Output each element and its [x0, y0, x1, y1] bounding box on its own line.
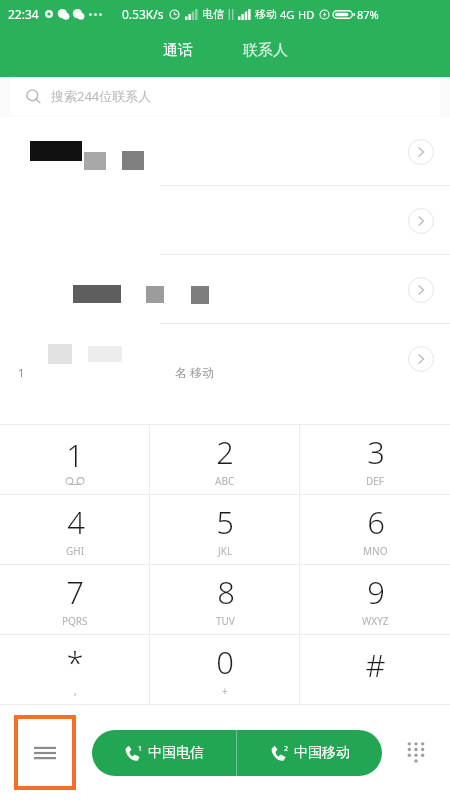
- button[interactable]: 2: [237, 730, 382, 776]
- staticText: 0: [216, 641, 234, 683]
- button[interactable]: *: [0, 635, 150, 704]
- button[interactable]: 8: [150, 565, 300, 634]
- button[interactable]: 1: [0, 425, 150, 494]
- staticText: #: [365, 644, 386, 686]
- staticText: 名 移动: [175, 364, 215, 380]
- button[interactable]: 6: [300, 495, 450, 564]
- button[interactable]: 通话: [149, 35, 207, 66]
- staticText: HD: [298, 7, 315, 22]
- staticText: 2: [284, 744, 289, 754]
- button[interactable]: Call details: [0, 255, 450, 324]
- button[interactable]: Call details: [406, 344, 436, 374]
- button[interactable]: Dialpad: [396, 733, 436, 773]
- staticText: 22:34: [8, 6, 39, 22]
- button[interactable]: 5: [150, 495, 300, 564]
- staticText: 4: [67, 501, 85, 543]
- staticText: ,: [74, 684, 77, 698]
- staticText: +: [222, 684, 228, 698]
- button[interactable]: #: [300, 635, 450, 704]
- staticText: MNO: [363, 544, 388, 558]
- button[interactable]: Call details: [406, 206, 436, 236]
- button[interactable]: Menu: [14, 715, 76, 790]
- staticText: 1: [18, 365, 25, 380]
- staticText: 8: [217, 571, 235, 613]
- staticText: 6: [367, 501, 385, 543]
- staticText: 1: [138, 744, 143, 754]
- staticText: 0.53K/s: [122, 6, 164, 22]
- button[interactable]: 联系人: [229, 35, 302, 66]
- staticText: 3: [367, 431, 385, 473]
- button[interactable]: Call details: [0, 117, 450, 186]
- button[interactable]: 搜索244位联系人: [10, 77, 440, 115]
- button[interactable]: Call details: [406, 137, 436, 167]
- staticText: 联系人: [243, 41, 288, 60]
- staticText: *: [66, 641, 84, 683]
- staticText: 87%: [357, 7, 379, 22]
- staticText: 5: [216, 501, 234, 543]
- staticText: 中国电信: [148, 744, 204, 762]
- button[interactable]: 7: [0, 565, 150, 634]
- staticText: 2: [216, 431, 234, 473]
- staticText: 1: [66, 434, 84, 476]
- button[interactable]: 2: [150, 425, 300, 494]
- staticText: 中国移动: [294, 744, 350, 762]
- staticText: 搜索244位联系人: [51, 87, 152, 105]
- button[interactable]: 9: [300, 565, 450, 634]
- staticText: DEF: [366, 474, 385, 488]
- button[interactable]: 1: [92, 730, 236, 776]
- staticText: 7: [66, 571, 84, 613]
- button[interactable]: 1: [0, 324, 450, 393]
- staticText: 通话: [163, 41, 193, 60]
- staticText: TUV: [216, 614, 235, 628]
- staticText: 9: [367, 571, 385, 613]
- button[interactable]: 0: [150, 635, 300, 704]
- staticText: WXYZ: [362, 614, 389, 628]
- button[interactable]: 3: [300, 425, 450, 494]
- button[interactable]: 4: [0, 495, 150, 564]
- staticText: 4G: [280, 7, 295, 22]
- staticText: PQRS: [62, 614, 88, 628]
- staticText: JKL: [218, 544, 233, 558]
- staticText: 移动: [255, 7, 277, 21]
- staticText: 电信: [202, 7, 224, 21]
- staticText: GHI: [66, 544, 85, 558]
- button[interactable]: Call details: [406, 275, 436, 305]
- staticText: ABC: [215, 474, 235, 488]
